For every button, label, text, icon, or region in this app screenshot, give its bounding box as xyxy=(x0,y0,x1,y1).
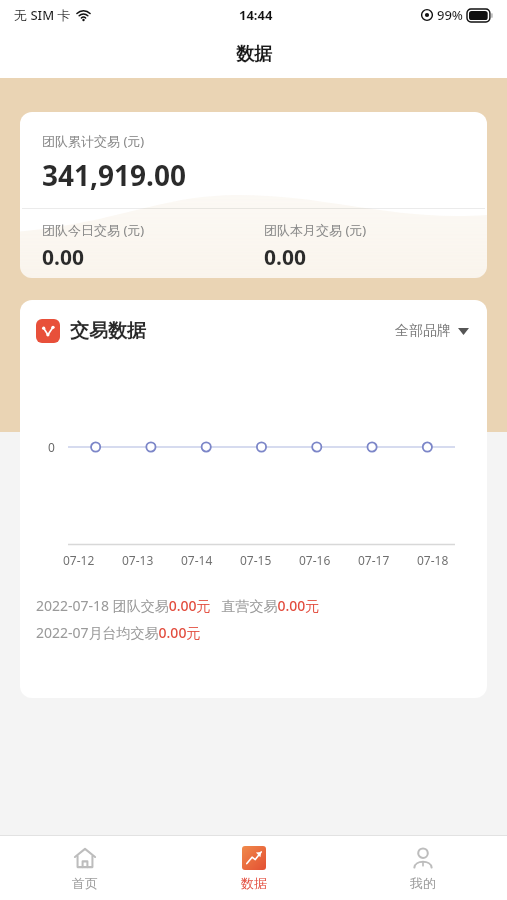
staticText: 我的 xyxy=(410,875,436,891)
staticText: 0.00 xyxy=(264,243,306,272)
staticText: 团队本月交易 (元) xyxy=(264,221,367,239)
staticText: 14:44 xyxy=(239,6,273,24)
staticText: 341,919.00 xyxy=(42,156,186,194)
staticText: 2022-07月台均交易0.00元 xyxy=(36,623,201,642)
button[interactable]: 全部品牌 xyxy=(393,318,471,344)
staticText: 无 SIM 卡 xyxy=(14,6,71,24)
staticText: 07-17 xyxy=(358,552,390,568)
other: 我的 xyxy=(411,846,435,870)
staticText: 首页 xyxy=(72,875,98,891)
staticText: 07-15 xyxy=(240,552,272,568)
staticText: 0 xyxy=(48,439,55,455)
staticText: 07-18 xyxy=(417,552,449,568)
staticText: 07-13 xyxy=(122,552,154,568)
button[interactable]: 数据 xyxy=(169,836,338,900)
staticText: 07-12 xyxy=(63,552,95,568)
staticText: 团队今日交易 (元) xyxy=(42,221,145,239)
other: 数据 xyxy=(242,846,266,870)
staticText: 数据 xyxy=(241,875,267,891)
staticText: 0.00 xyxy=(42,243,84,272)
staticText: 交易数据 xyxy=(70,319,146,343)
staticText: 团队累计交易 (元) xyxy=(42,132,145,150)
button[interactable]: 我的 xyxy=(338,836,507,900)
button[interactable]: 团队累计交易 (元) xyxy=(20,112,487,278)
staticText: 99% xyxy=(437,6,463,24)
other: 首页 xyxy=(73,846,97,870)
staticText: 数据 xyxy=(236,43,272,66)
staticText: 07-14 xyxy=(181,552,213,568)
staticText: 2022-07-18 团队交易0.00元 直营交易0.00元 xyxy=(36,596,320,615)
button[interactable]: 首页 xyxy=(0,836,169,900)
staticText: 全部品牌 xyxy=(395,322,451,340)
staticText: 07-16 xyxy=(299,552,331,568)
